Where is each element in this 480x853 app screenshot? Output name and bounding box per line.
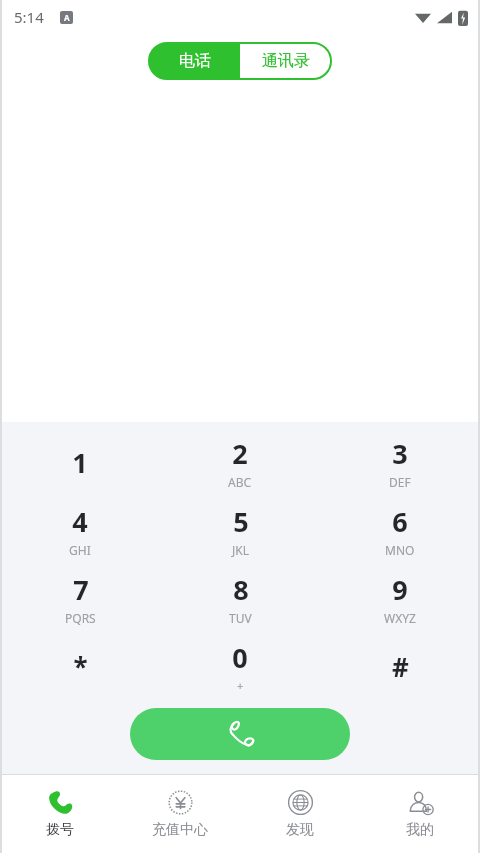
staticText: * bbox=[73, 649, 88, 684]
button[interactable]: 2 bbox=[160, 428, 320, 496]
staticText: 发现 bbox=[286, 821, 314, 839]
button[interactable]: # bbox=[320, 632, 480, 700]
staticText: WXYZ bbox=[384, 610, 416, 626]
button[interactable]: 4 bbox=[0, 496, 160, 564]
button[interactable]: 通讯录 bbox=[240, 43, 331, 79]
button[interactable]: 7 bbox=[0, 564, 160, 632]
button[interactable]: 我的 bbox=[360, 775, 480, 853]
button[interactable]: 充值中心 bbox=[120, 775, 240, 853]
button[interactable]: * bbox=[0, 632, 160, 700]
button[interactable]: 5 bbox=[160, 496, 320, 564]
button[interactable]: 6 bbox=[320, 496, 480, 564]
staticText: GHI bbox=[69, 542, 91, 558]
staticText: PQRS bbox=[65, 610, 96, 626]
staticText: 8 bbox=[233, 571, 249, 608]
staticText: 0 bbox=[232, 639, 248, 676]
staticText: DEF bbox=[389, 474, 411, 490]
staticText: A bbox=[64, 12, 70, 23]
button[interactable]: 8 bbox=[160, 564, 320, 632]
staticText: 4 bbox=[72, 503, 88, 540]
staticText: 9 bbox=[392, 571, 408, 608]
staticText: TUV bbox=[229, 610, 252, 626]
button[interactable]: 0 bbox=[160, 632, 320, 700]
staticText: # bbox=[392, 649, 409, 684]
staticText: 通讯录 bbox=[262, 51, 310, 71]
staticText: 我的 bbox=[406, 821, 434, 839]
staticText: + bbox=[237, 678, 244, 693]
staticText: 1 bbox=[72, 444, 88, 481]
staticText: 2 bbox=[232, 435, 248, 472]
staticText: 充值中心 bbox=[152, 821, 208, 839]
button[interactable]: 3 bbox=[320, 428, 480, 496]
button[interactable]: Call bbox=[130, 708, 350, 760]
button[interactable]: 9 bbox=[320, 564, 480, 632]
staticText: 拨号 bbox=[46, 821, 74, 839]
staticText: JKL bbox=[232, 542, 249, 558]
staticText: 7 bbox=[73, 571, 89, 608]
button[interactable]: 发现 bbox=[240, 775, 360, 853]
staticText: 5 bbox=[233, 503, 249, 540]
staticText: 6 bbox=[392, 503, 408, 540]
staticText: 5:14 bbox=[14, 7, 44, 27]
button[interactable]: 1 bbox=[0, 428, 160, 496]
staticText: 3 bbox=[392, 435, 408, 472]
staticText: ABC bbox=[228, 474, 252, 490]
button[interactable]: 拨号 bbox=[0, 775, 120, 853]
staticText: MNO bbox=[385, 542, 415, 558]
staticText: 电话 bbox=[179, 51, 211, 71]
button[interactable]: 电话 bbox=[149, 43, 240, 79]
